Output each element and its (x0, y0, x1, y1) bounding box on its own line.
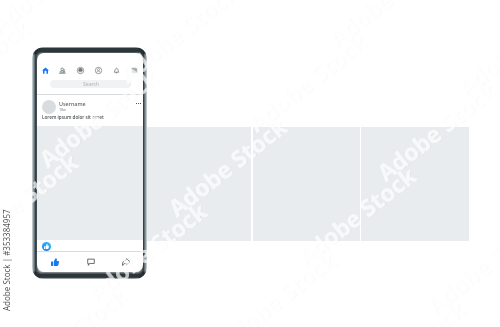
button[interactable]: Post photo (37, 126, 143, 240)
button[interactable]: Profile photo (42, 100, 56, 114)
button[interactable]: Reactions (42, 242, 51, 251)
staticText: 18w (59, 107, 66, 112)
button[interactable]: Marketplace (89, 62, 107, 78)
button[interactable]: Friends (54, 62, 71, 78)
staticText: Username (59, 100, 86, 107)
button[interactable] (147, 127, 251, 241)
button[interactable] (253, 127, 360, 241)
button[interactable]: Notifications (107, 62, 125, 78)
staticText: Lorem ipsum dolor sit amet (42, 114, 104, 120)
staticText: Search (83, 81, 99, 88)
button[interactable]: Search (50, 80, 131, 88)
button[interactable]: More options (134, 99, 142, 107)
button[interactable]: Like (37, 252, 73, 272)
button[interactable]: Comment (73, 252, 108, 272)
button[interactable] (361, 127, 469, 241)
button[interactable]: Share (108, 252, 143, 272)
button[interactable]: Home (37, 62, 54, 78)
button[interactable]: Menu (125, 62, 143, 78)
button[interactable]: Watch (71, 62, 89, 78)
